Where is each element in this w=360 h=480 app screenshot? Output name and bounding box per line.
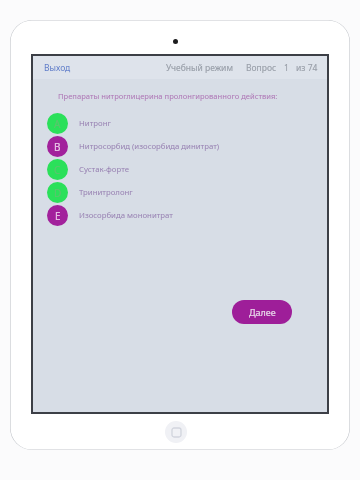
- staticText: из 74: [296, 62, 318, 74]
- button[interactable]: A: [33, 112, 327, 135]
- staticText: Вопрос: [246, 62, 277, 74]
- staticText: C: [54, 163, 61, 177]
- staticText: 1: [284, 62, 289, 74]
- button[interactable]: Home: [165, 421, 187, 443]
- button[interactable]: Далее: [232, 300, 292, 324]
- button[interactable]: D: [33, 181, 327, 204]
- staticText: Сустак-форте: [79, 164, 129, 175]
- staticText: Далее: [249, 306, 276, 318]
- staticText: Нитронг: [79, 118, 111, 129]
- staticText: Тринитролонг: [79, 187, 133, 198]
- button[interactable]: C: [33, 158, 327, 181]
- staticText: Изосорбида мононитрат: [79, 210, 173, 221]
- staticText: Препараты нитроглицерина пролонгированно…: [58, 91, 278, 101]
- staticText: Выход: [44, 62, 71, 74]
- staticText: B: [54, 140, 61, 154]
- staticText: Нитросорбид (изосорбида динитрат): [79, 141, 220, 152]
- staticText: Учебный режим: [166, 62, 233, 74]
- staticText: A: [54, 117, 61, 131]
- button[interactable]: Выход: [42, 59, 73, 77]
- button[interactable]: B: [33, 135, 327, 158]
- staticText: D: [54, 186, 62, 200]
- button[interactable]: E: [33, 204, 327, 227]
- staticText: E: [55, 209, 61, 223]
